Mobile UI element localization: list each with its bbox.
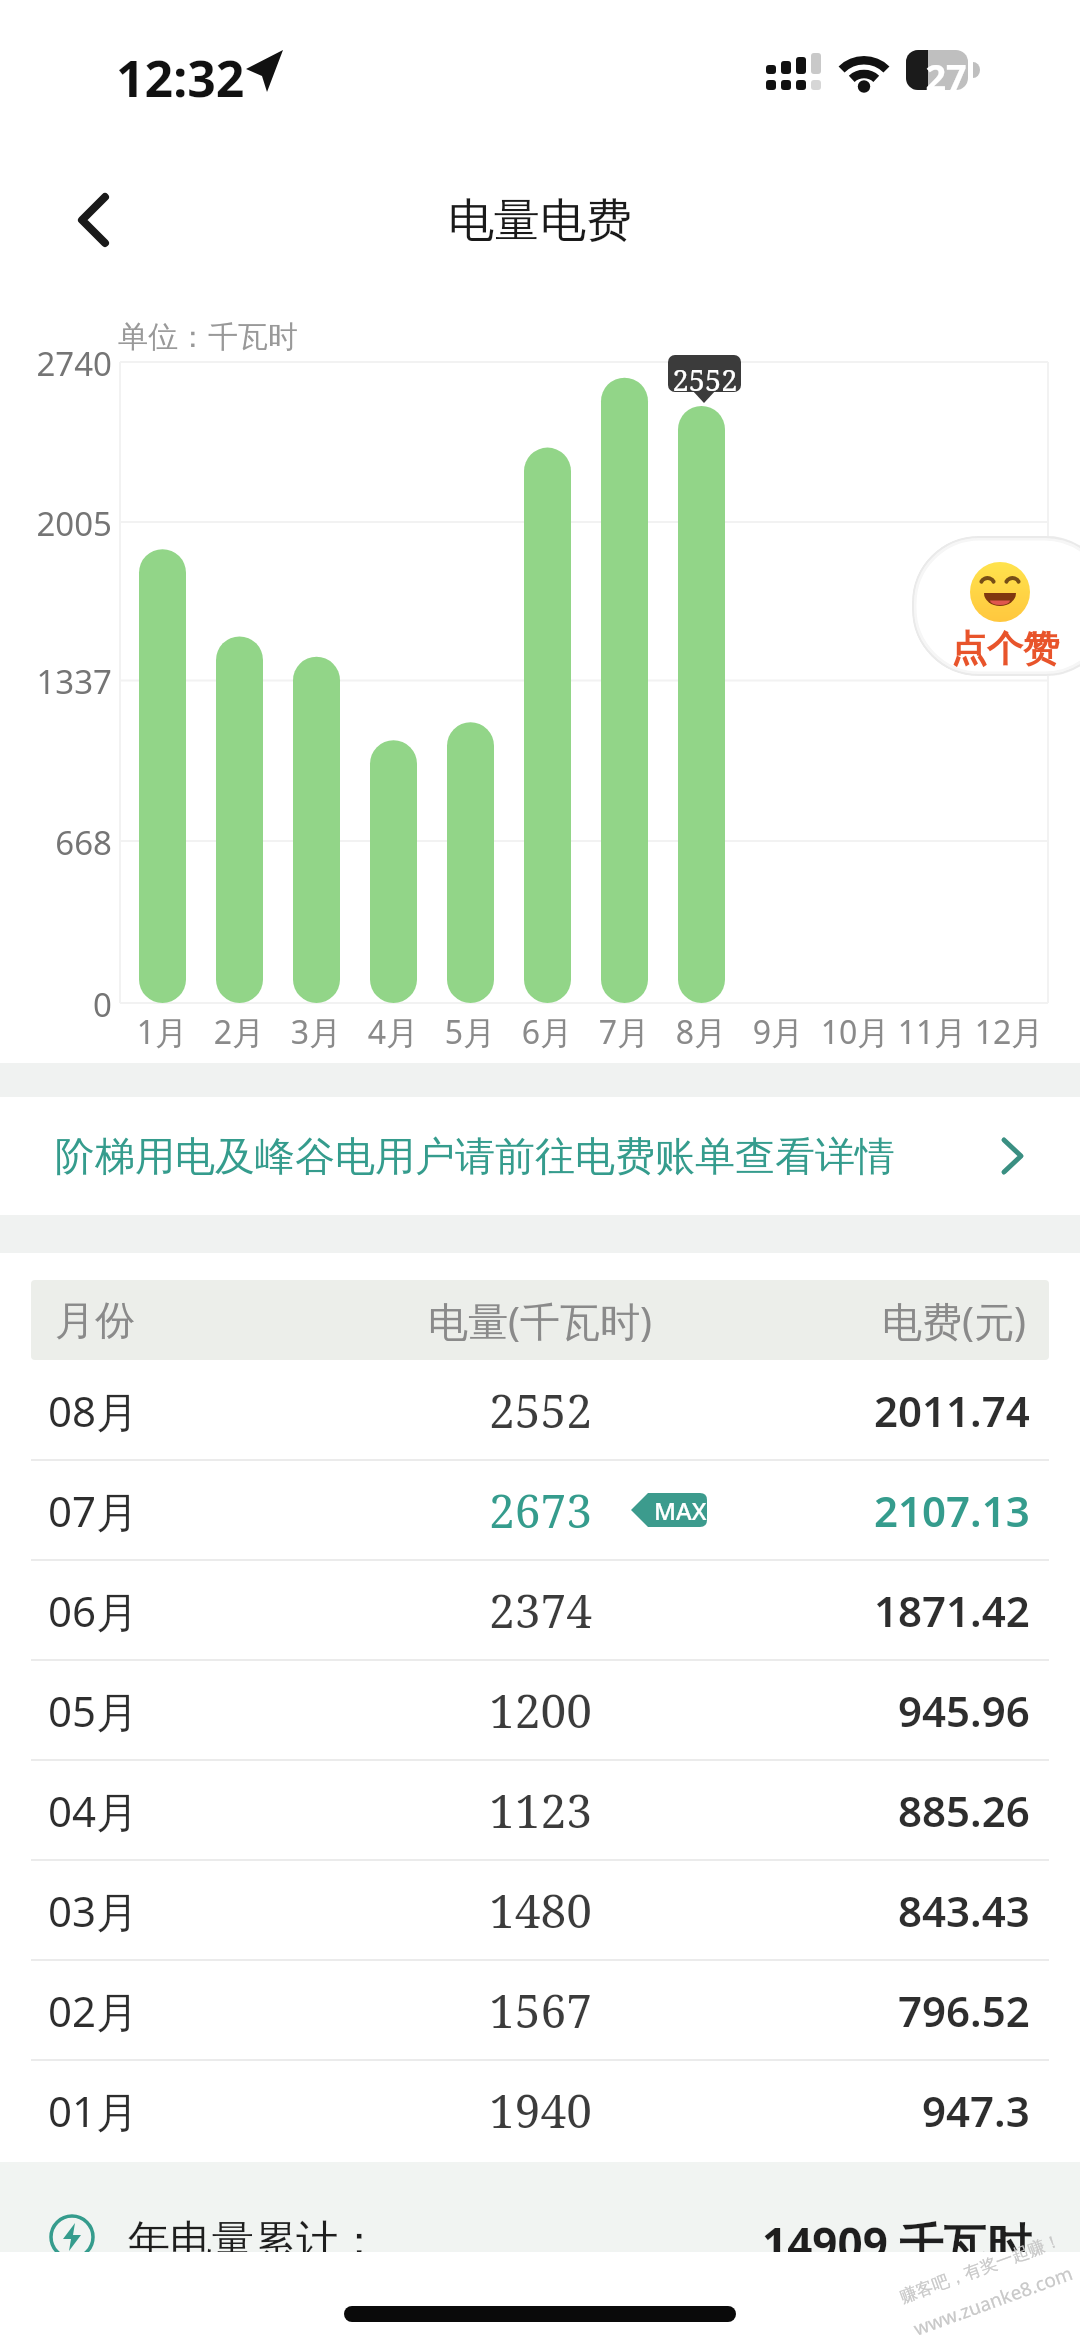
staticText: 1567 (489, 1979, 592, 2042)
staticText: 668 (0, 820, 112, 865)
staticText: MAX (654, 1494, 707, 1527)
button[interactable]: 03月 (0, 1860, 1080, 1960)
staticText: 05月 (48, 1682, 139, 1739)
staticText: 赚客吧，有奖一起赚！ (897, 2230, 1064, 2308)
button[interactable]: 05月 (0, 1660, 1080, 1760)
staticText: 06月 (48, 1582, 139, 1639)
button[interactable]: 阶梯用电及峰谷电用户请前往电费账单查看详情 (0, 1097, 1080, 1215)
staticText: 2107.13 (874, 1482, 1030, 1539)
button[interactable]: 08月 (0, 1360, 1080, 1460)
staticText: 796.52 (898, 1982, 1030, 2039)
staticText: 电量(千瓦时) (428, 1293, 652, 1348)
staticText: 27 (918, 53, 974, 102)
button[interactable]: 02月 (0, 1960, 1080, 2060)
staticText: 电费(元) (882, 1293, 1026, 1348)
button[interactable] (60, 180, 140, 260)
staticText: 2011.74 (874, 1382, 1030, 1439)
staticText: www.zuanke8.com (910, 2260, 1077, 2341)
staticText: 03月 (48, 1882, 139, 1939)
button[interactable]: 01月 (0, 2060, 1080, 2160)
staticText: 9月 (728, 1010, 828, 1054)
staticText: 1940 (489, 2079, 592, 2142)
staticText: 8月 (651, 1010, 751, 1054)
staticText: 2673 (489, 1479, 592, 1542)
staticText: 843.43 (898, 1882, 1030, 1939)
staticText: 07月 (48, 1482, 139, 1539)
staticText: 14909 千瓦时 (762, 2213, 1032, 2252)
staticText: 月份 (55, 1295, 135, 1345)
staticText: 02月 (48, 1982, 139, 2039)
staticText: 1480 (489, 1879, 592, 1942)
staticText: 947.3 (922, 2082, 1030, 2139)
staticText: 0 (0, 982, 112, 1027)
button[interactable]: 07月 (0, 1460, 1080, 1560)
staticText: 点个赞 (940, 626, 1070, 671)
staticText: 2552 (659, 360, 751, 399)
staticText: 2374 (489, 1579, 592, 1642)
staticText: 2552 (489, 1379, 592, 1442)
button[interactable]: 06月 (0, 1560, 1080, 1660)
staticText: 1月 (112, 1010, 212, 1054)
staticText: 7月 (574, 1010, 674, 1054)
staticText: 1871.42 (874, 1582, 1030, 1639)
staticText: 4月 (343, 1010, 443, 1054)
staticText: 单位：千瓦时 (118, 318, 418, 356)
staticText: 2740 (0, 341, 112, 386)
staticText: 5月 (420, 1010, 520, 1054)
staticText: 12月 (959, 1010, 1059, 1054)
staticText: 1337 (0, 659, 112, 704)
staticText: 10月 (805, 1010, 905, 1054)
button[interactable]: 04月 (0, 1760, 1080, 1860)
staticText: 3月 (266, 1010, 366, 1054)
staticText: 年电量累计： (128, 2215, 380, 2252)
staticText: 电量电费 (340, 192, 740, 250)
staticText: 12:32 (116, 44, 316, 112)
staticText: 2005 (0, 501, 112, 546)
staticText: 08月 (48, 1382, 139, 1439)
button[interactable]: 点个赞 (912, 536, 1080, 676)
staticText: 04月 (48, 1782, 139, 1839)
staticText: 885.26 (898, 1782, 1030, 1839)
staticText: 1200 (489, 1679, 592, 1742)
staticText: 945.96 (898, 1682, 1030, 1739)
staticText: 2月 (189, 1010, 289, 1054)
staticText: 01月 (48, 2082, 139, 2139)
staticText: 阶梯用电及峰谷电用户请前往电费账单查看详情 (55, 1131, 895, 1181)
staticText: 6月 (497, 1010, 597, 1054)
staticText: 1123 (489, 1779, 592, 1842)
staticText: 11月 (882, 1010, 982, 1054)
